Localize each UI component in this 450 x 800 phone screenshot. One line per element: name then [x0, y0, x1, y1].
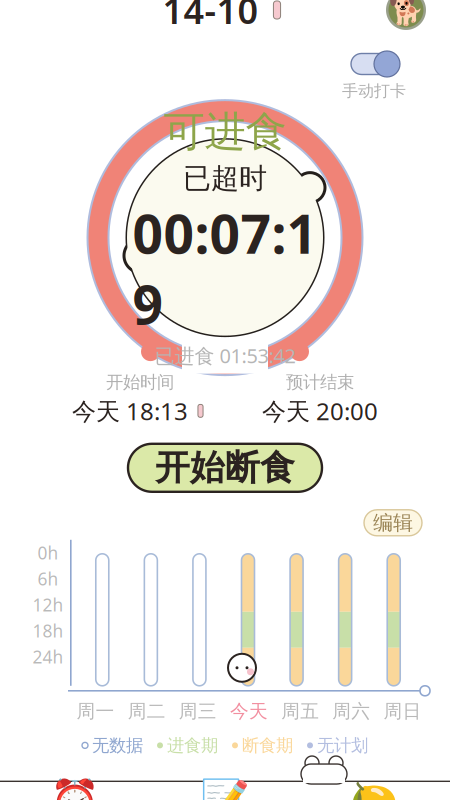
- staticText: 无计划: [317, 735, 368, 756]
- staticText: 🍋: [350, 777, 400, 800]
- button[interactable]: 14-10: [156, 0, 293, 36]
- button[interactable]: 开始时间: [62, 369, 218, 430]
- staticText: 00:07:19: [132, 198, 317, 339]
- staticText: 编辑: [373, 510, 413, 535]
- staticText: 预计结束: [286, 372, 354, 393]
- button[interactable]: 开始断食: [128, 444, 322, 492]
- staticText: 今天: [230, 700, 268, 723]
- staticText: 周二: [128, 700, 166, 723]
- button[interactable]: 手动打卡: [334, 48, 414, 103]
- staticText: 6h: [37, 567, 58, 590]
- button[interactable]: 预计结束: [252, 369, 388, 430]
- staticText: 无数据: [92, 735, 143, 756]
- staticText: 周六: [332, 700, 370, 723]
- staticText: 0h: [37, 541, 58, 564]
- staticText: 断食期: [242, 735, 293, 756]
- staticText: 今天 18:13: [72, 395, 188, 427]
- staticText: 周一: [77, 700, 115, 723]
- staticText: 已进食 01:53:42: [154, 342, 295, 369]
- button[interactable]: 📝: [150, 771, 300, 800]
- staticText: 🐕: [387, 0, 424, 27]
- staticText: 18h: [32, 619, 63, 642]
- button[interactable]: ⏰: [0, 771, 150, 800]
- staticText: 周五: [281, 700, 319, 723]
- staticText: 已超时: [183, 161, 267, 196]
- button[interactable]: Profile: [384, 0, 428, 32]
- staticText: 周三: [179, 700, 217, 723]
- staticText: 可进食: [163, 106, 286, 157]
- staticText: 开始断食: [155, 446, 295, 489]
- staticText: 12h: [32, 593, 63, 616]
- staticText: 进食期: [167, 735, 218, 756]
- staticText: 今天 20:00: [262, 395, 378, 427]
- staticText: 周日: [383, 700, 421, 723]
- staticText: 14-10: [162, 0, 258, 34]
- staticText: ⏰: [50, 777, 100, 800]
- staticText: 📝: [200, 777, 250, 800]
- staticText: 开始时间: [106, 372, 174, 393]
- button[interactable]: 🍋: [300, 771, 450, 800]
- staticText: 手动打卡: [342, 81, 406, 101]
- staticText: 24h: [32, 645, 63, 668]
- button[interactable]: 编辑: [364, 510, 422, 536]
